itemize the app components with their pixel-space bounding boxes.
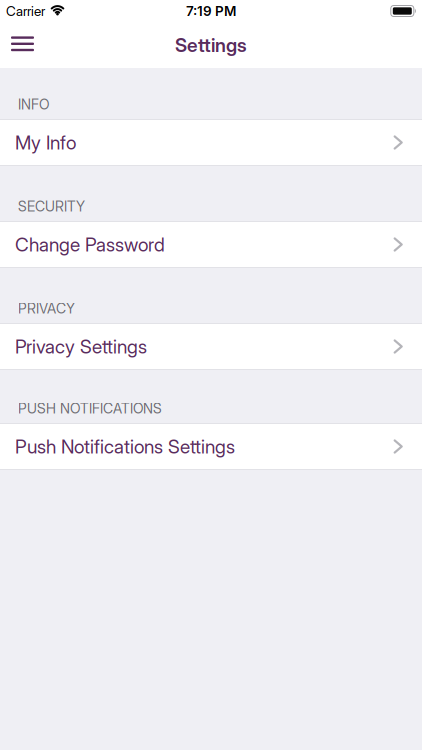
- staticText: PRIVACY: [18, 300, 75, 317]
- staticText: SECURITY: [18, 198, 85, 215]
- button[interactable]: Privacy Settings: [0, 323, 422, 370]
- staticText: INFO: [18, 96, 49, 113]
- button[interactable]: My Info: [0, 119, 422, 166]
- staticText: My Info: [15, 131, 76, 154]
- button[interactable]: Menu: [0, 22, 46, 68]
- button[interactable]: Push Notifications Settings: [0, 423, 422, 470]
- staticText: Push Notifications Settings: [15, 435, 235, 458]
- staticText: Settings: [175, 33, 247, 56]
- staticText: Privacy Settings: [15, 335, 147, 358]
- staticText: Carrier: [6, 3, 45, 19]
- staticText: 7:19 PM: [186, 3, 236, 19]
- staticText: Change Password: [15, 233, 165, 256]
- staticText: PUSH NOTIFICATIONS: [18, 400, 162, 417]
- button[interactable]: Change Password: [0, 221, 422, 268]
